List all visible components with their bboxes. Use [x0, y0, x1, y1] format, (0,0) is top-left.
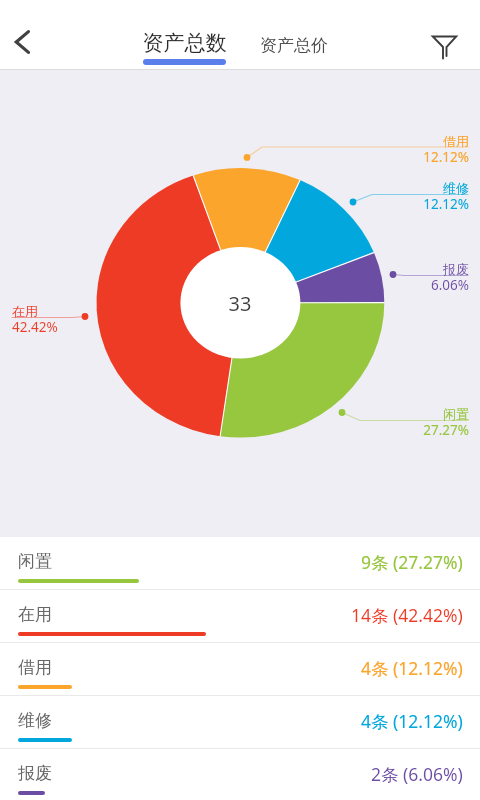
staticText: 闲置 [309, 406, 469, 422]
button[interactable]: 维修 [0, 696, 480, 748]
staticText: 在用 [12, 303, 172, 319]
staticText: 维修 [309, 180, 469, 196]
staticText: 9条 (27.27%) [361, 550, 463, 574]
button[interactable]: 报废 [0, 749, 480, 800]
staticText: 6.06% [309, 276, 469, 294]
staticText: 维修 [18, 710, 52, 731]
button[interactable]: 借用 [0, 643, 480, 695]
button[interactable]: 资产总价 [250, 24, 338, 58]
staticText: 42.42% [12, 318, 172, 336]
button[interactable]: Back [0, 19, 45, 64]
staticText: 借用 [18, 657, 52, 678]
staticText: 14条 (42.42%) [351, 603, 463, 627]
button[interactable]: 在用 [0, 590, 480, 642]
staticText: 12.12% [309, 195, 469, 213]
staticText: 借用 [309, 133, 469, 149]
staticText: 资产总价 [250, 35, 338, 56]
staticText: 33 [200, 290, 280, 317]
staticText: 在用 [18, 604, 52, 625]
staticText: 2条 (6.06%) [371, 762, 463, 786]
staticText: 闲置 [18, 551, 52, 572]
staticText: 资产总数 [137, 30, 232, 56]
staticText: 12.12% [309, 148, 469, 166]
staticText: 4条 (12.12%) [361, 656, 463, 680]
staticText: 报废 [309, 261, 469, 277]
button[interactable]: 资产总数 [137, 24, 232, 70]
button[interactable]: Filter [421, 23, 467, 69]
staticText: 4条 (12.12%) [361, 709, 463, 733]
button[interactable]: 闲置 [0, 537, 480, 589]
staticText: 报废 [18, 763, 52, 784]
staticText: 27.27% [309, 421, 469, 439]
